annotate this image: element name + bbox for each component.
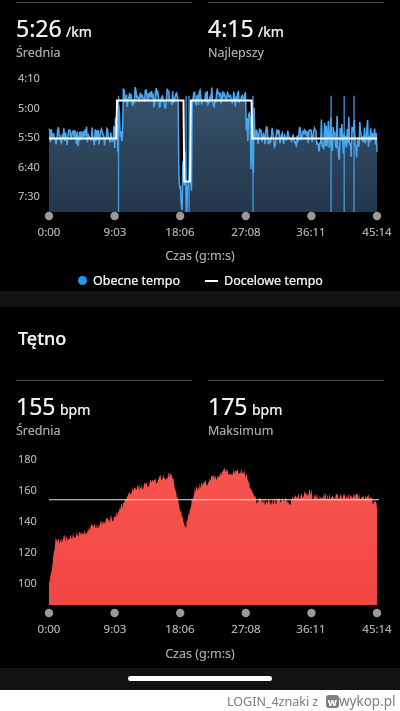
staticText: Średnia bbox=[16, 44, 61, 61]
staticText: wykop.pl bbox=[339, 692, 396, 710]
staticText: Tętno bbox=[18, 326, 67, 351]
staticText: 27:08 bbox=[222, 224, 270, 240]
staticText: 6:40 bbox=[18, 159, 40, 174]
staticText: Czas (g:m:s) bbox=[0, 247, 400, 264]
staticText: bpm bbox=[60, 400, 91, 419]
staticText: 0:00 bbox=[25, 621, 73, 637]
button[interactable]: Docelowe tempo bbox=[203, 272, 325, 289]
button[interactable]: 175 bbox=[208, 380, 384, 439]
button[interactable]: 155 bbox=[16, 380, 192, 439]
staticText: 36:11 bbox=[287, 621, 335, 637]
staticText: /km bbox=[66, 22, 92, 41]
staticText: 0:00 bbox=[25, 224, 73, 240]
staticText: W bbox=[328, 696, 337, 708]
staticText: 5:50 bbox=[18, 129, 40, 144]
staticText: 160 bbox=[18, 482, 37, 497]
staticText: 180 bbox=[18, 451, 37, 466]
staticText: 5:26 bbox=[16, 12, 62, 43]
staticText: 140 bbox=[18, 513, 37, 528]
staticText: 4:15 bbox=[208, 12, 254, 43]
staticText: 5:00 bbox=[18, 100, 40, 115]
staticText: 27:08 bbox=[222, 621, 270, 637]
button[interactable]: 4:15 bbox=[208, 2, 384, 61]
staticText: 36:11 bbox=[287, 224, 335, 240]
staticText: Obecne tempo bbox=[93, 272, 181, 289]
button[interactable]: 5:26 bbox=[16, 2, 192, 61]
staticText: 45:14 bbox=[353, 621, 400, 637]
staticText: 120 bbox=[18, 544, 37, 559]
staticText: 4:10 bbox=[18, 70, 40, 85]
staticText: 9:03 bbox=[91, 621, 139, 637]
button[interactable]: Obecne tempo bbox=[76, 272, 183, 289]
staticText: 7:30 bbox=[18, 188, 40, 203]
staticText: LOGIN_4znaki z bbox=[227, 693, 319, 710]
staticText: 100 bbox=[18, 575, 37, 590]
staticText: Średnia bbox=[16, 422, 61, 439]
staticText: bpm bbox=[252, 400, 283, 419]
other: Home gesture bbox=[128, 676, 272, 681]
staticText: 18:06 bbox=[156, 224, 204, 240]
staticText: 18:06 bbox=[156, 621, 204, 637]
staticText: Najlepszy bbox=[208, 44, 264, 61]
staticText: 9:03 bbox=[91, 224, 139, 240]
staticText: /km bbox=[258, 22, 284, 41]
staticText: Czas (g:m:s) bbox=[0, 645, 400, 662]
staticText: 175 bbox=[208, 390, 248, 421]
staticText: Maksimum bbox=[208, 422, 274, 439]
staticText: 155 bbox=[16, 390, 56, 421]
staticText: 45:14 bbox=[353, 224, 400, 240]
staticText: Docelowe tempo bbox=[224, 272, 323, 289]
